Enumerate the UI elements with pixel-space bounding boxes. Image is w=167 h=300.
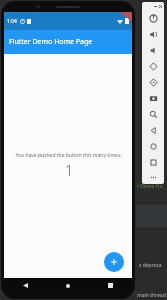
button[interactable]: Back [4, 278, 46, 293]
button[interactable]: Rotate left [142, 58, 164, 74]
button[interactable]: Volume down [142, 42, 164, 58]
button[interactable]: Volume up [142, 26, 164, 42]
staticText: s depreca [139, 262, 162, 269]
button[interactable]: Close [158, 4, 163, 9]
staticText: 1:04 [7, 18, 17, 25]
button[interactable]: Zoom [142, 106, 164, 122]
staticText: 1 [65, 161, 73, 180]
staticText: You have pushed the button this many tim… [15, 152, 122, 159]
button[interactable]: Home [46, 278, 89, 293]
button[interactable]: Flutter Demo Home Page [4, 30, 132, 54]
button[interactable]: Back [142, 122, 164, 138]
button[interactable]: Take screenshot [142, 90, 164, 106]
staticText: Flutter Demo Home Page [9, 37, 93, 47]
button[interactable]: Increment [104, 252, 124, 272]
button[interactable]: Power [142, 10, 164, 26]
button[interactable]: Recent apps [142, 154, 164, 170]
button[interactable]: Minimize [153, 4, 157, 8]
staticText: r Demo Ho [137, 183, 163, 190]
button[interactable]: More [142, 170, 164, 184]
button[interactable]: Rotate right [142, 74, 164, 90]
staticText: main thread [137, 292, 166, 299]
button[interactable]: Home [142, 138, 164, 154]
button[interactable]: Recent apps [89, 278, 132, 293]
